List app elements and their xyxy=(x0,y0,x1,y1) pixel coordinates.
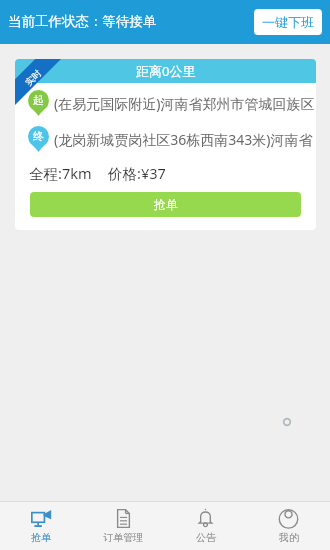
staticText: 实时 xyxy=(23,67,43,88)
button[interactable]: 抢单 xyxy=(30,192,301,217)
staticText: 全程:7km xyxy=(29,163,92,183)
staticText: 当前工作状态：等待接单 xyxy=(8,13,157,30)
staticText: 抢单 xyxy=(31,531,51,544)
staticText: (在易元国际附近)河南省郑州市管城回族区 xyxy=(54,94,315,113)
button[interactable]: 一键下班 xyxy=(254,9,322,35)
staticText: 距离0公里 xyxy=(136,62,196,80)
staticText: 抢单 xyxy=(154,197,178,212)
button[interactable]: 我的 xyxy=(247,502,330,550)
staticText: 价格:¥37 xyxy=(108,163,166,183)
staticText: 公告 xyxy=(196,531,216,544)
button[interactable]: 公告 xyxy=(164,502,247,550)
staticText: 终 xyxy=(33,129,44,143)
staticText: (龙岗新城贾岗社区36栋西南343米)河南省 xyxy=(54,130,313,149)
button[interactable]: 抢单 xyxy=(0,502,82,550)
staticText: 我的 xyxy=(279,531,299,544)
staticText: 起 xyxy=(33,93,44,107)
staticText: 一键下班 xyxy=(262,14,314,30)
button[interactable]: 订单管理 xyxy=(82,502,164,550)
staticText: 订单管理 xyxy=(103,531,143,544)
